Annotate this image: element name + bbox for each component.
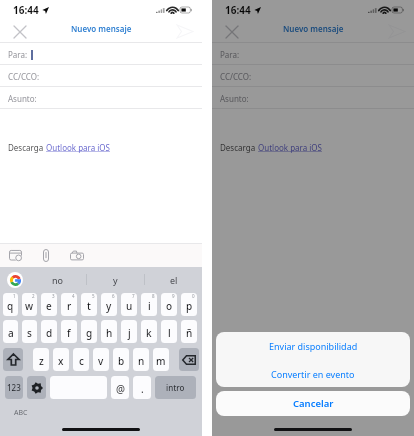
staticText: c [79, 354, 84, 368]
button[interactable]: Asunto: [0, 87, 202, 109]
staticText: intro [166, 382, 185, 393]
staticText: Enviar disponibilidad [269, 340, 358, 352]
button[interactable]: f [61, 320, 77, 343]
button[interactable]: n [133, 348, 149, 371]
staticText: Asunto: [220, 93, 249, 104]
button[interactable]: v [93, 348, 109, 371]
staticText: Convertir en evento [271, 368, 355, 380]
button[interactable] [27, 376, 46, 399]
button[interactable]: Camara [66, 244, 88, 266]
button[interactable]: Enviar disponibilidad [216, 332, 410, 360]
button[interactable]: . [133, 376, 151, 399]
staticText: no [52, 274, 64, 286]
button[interactable]: Para: [212, 43, 414, 65]
button[interactable] [179, 348, 199, 371]
staticText: m [156, 354, 166, 368]
button[interactable]: l [161, 320, 177, 343]
staticText: j [128, 326, 131, 340]
staticText: el [170, 274, 178, 286]
staticText: ñ [186, 326, 193, 340]
button[interactable]: CC/CCO: [212, 65, 414, 87]
button[interactable]: p [181, 293, 197, 316]
button[interactable]: Cerrar [0, 20, 40, 43]
button[interactable]: x [53, 348, 69, 371]
button[interactable]: u [121, 293, 137, 316]
staticText: y [106, 299, 112, 313]
staticText: 16:44 [225, 3, 251, 17]
staticText: 2 [32, 293, 35, 299]
staticText: Nuevo mensaje [283, 23, 344, 34]
button[interactable]: Para: [0, 43, 202, 65]
staticText: l [168, 326, 171, 340]
staticText: Cancelar [293, 397, 334, 410]
staticText: p [186, 299, 193, 313]
button[interactable]: z [33, 348, 49, 371]
button[interactable]: a [3, 320, 18, 343]
button[interactable]: i [141, 293, 157, 316]
staticText: Nuevo mensaje [71, 23, 132, 34]
button[interactable]: Calendario [4, 244, 26, 266]
button[interactable]: k [141, 320, 157, 343]
button[interactable]: 123 [5, 376, 23, 399]
button[interactable]: t [81, 293, 97, 316]
staticText: k [146, 326, 152, 340]
staticText: Para: [8, 49, 28, 60]
button[interactable]: o [161, 293, 177, 316]
button[interactable]: CC/CCO: [0, 65, 202, 87]
staticText: s [27, 326, 32, 340]
button[interactable]: Outlook para iOS [46, 142, 110, 153]
button[interactable]: Cancelar [216, 391, 410, 416]
staticText: r [67, 299, 72, 313]
staticText: . [141, 382, 144, 396]
button[interactable]: h [101, 320, 117, 343]
button[interactable]: Adjuntar [35, 244, 57, 266]
staticText: n [138, 354, 145, 368]
staticText: Para: [220, 49, 240, 60]
button[interactable]: j [121, 320, 137, 343]
staticText: ABC [14, 408, 28, 418]
staticText: d [46, 326, 53, 340]
staticText: e [46, 299, 52, 313]
button[interactable]: d [41, 320, 57, 343]
staticText: f [67, 326, 71, 340]
button[interactable]: @ [111, 376, 129, 399]
staticText: v [98, 354, 104, 368]
button[interactable]: Enviar [168, 20, 202, 43]
button[interactable]: s [22, 320, 37, 343]
button[interactable]: Google [7, 272, 23, 288]
staticText: CC/CCO: [220, 71, 252, 82]
button[interactable]: el [145, 267, 202, 292]
staticText: b [118, 354, 125, 368]
staticText: q [7, 299, 14, 313]
button[interactable]: Outlook para iOS [258, 142, 322, 153]
button[interactable] [3, 348, 23, 371]
button[interactable]: Asunto: [212, 87, 414, 109]
staticText: h [106, 326, 113, 340]
button[interactable]: y [101, 293, 117, 316]
button[interactable]: q [3, 293, 18, 316]
staticText: 8 [152, 293, 155, 299]
button[interactable]: c [73, 348, 89, 371]
button[interactable]: g [81, 320, 97, 343]
button[interactable]: intro [155, 376, 196, 399]
staticText: 1 [13, 293, 16, 299]
staticText: t [87, 299, 91, 313]
staticText: g [86, 326, 93, 340]
button[interactable]: b [113, 348, 129, 371]
staticText: 3 [52, 293, 55, 299]
button[interactable]: m [153, 348, 169, 371]
staticText: 9 [172, 293, 175, 299]
staticText: 16:44 [13, 3, 39, 17]
button[interactable]: r [61, 293, 77, 316]
button[interactable]: y [87, 267, 144, 292]
button[interactable]: ñ [181, 320, 197, 343]
button[interactable]: Cerrar [212, 20, 252, 43]
button[interactable]: e [41, 293, 57, 316]
button[interactable]: no [29, 267, 86, 292]
button[interactable]: w [22, 293, 37, 316]
button[interactable]: Convertir en evento [216, 360, 410, 387]
staticText: Descarga [8, 142, 46, 153]
staticText: 5 [92, 293, 95, 299]
